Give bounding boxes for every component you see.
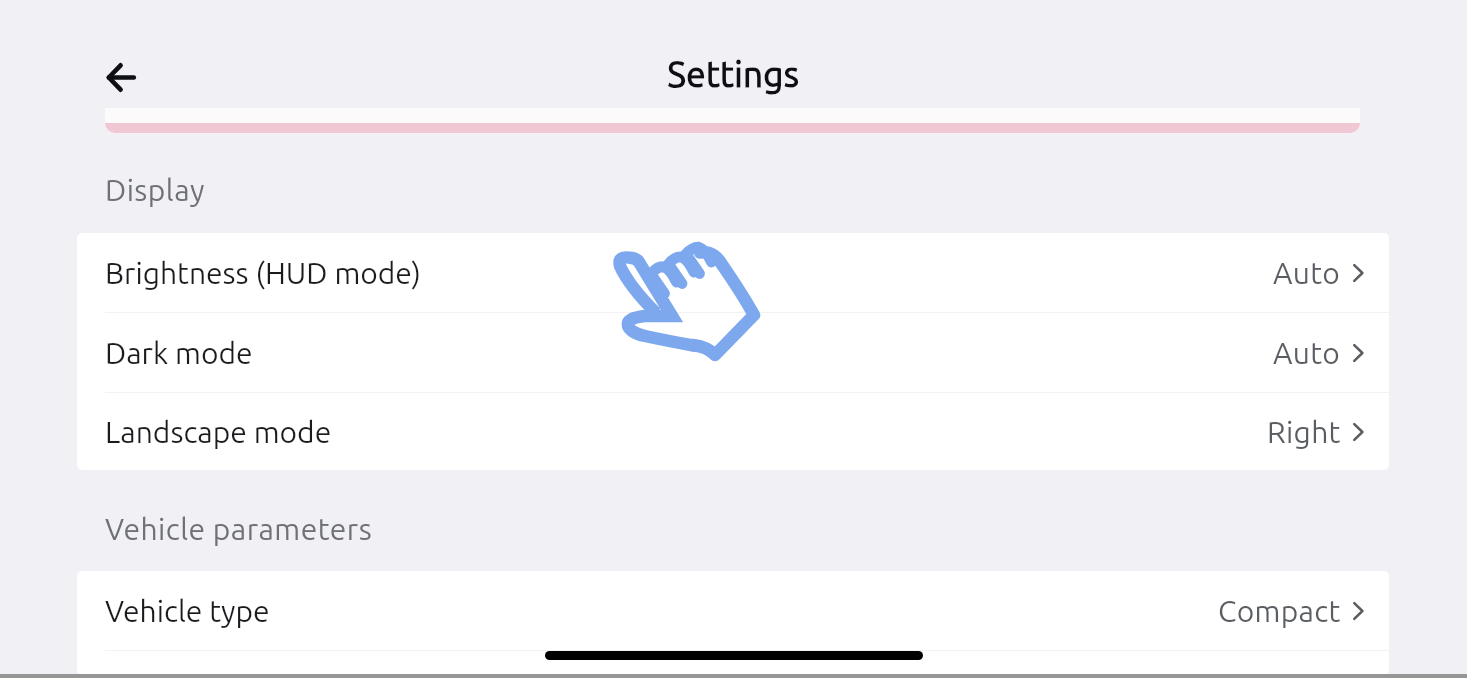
staticText: Display xyxy=(105,173,205,207)
staticText: Landscape mode xyxy=(105,415,332,449)
button[interactable]: Brightness (HUD mode) xyxy=(77,233,1389,312)
button[interactable] xyxy=(105,70,1360,133)
staticText: Vehicle parameters xyxy=(105,512,373,546)
staticText: Vehicle type xyxy=(105,594,270,628)
staticText: Dark mode xyxy=(105,336,253,370)
staticText: Auto xyxy=(1273,336,1341,370)
staticText: Brightness (HUD mode) xyxy=(105,256,421,290)
button[interactable]: Dark mode xyxy=(77,313,1389,392)
staticText: Settings xyxy=(0,54,1467,93)
button[interactable]: Vehicle type xyxy=(77,571,1389,650)
button[interactable]: Landscape mode xyxy=(77,393,1389,470)
staticText: Compact xyxy=(1218,594,1341,628)
button[interactable]: Back xyxy=(101,58,139,96)
staticText: Auto xyxy=(1273,256,1341,290)
staticText: Right xyxy=(1267,415,1341,449)
